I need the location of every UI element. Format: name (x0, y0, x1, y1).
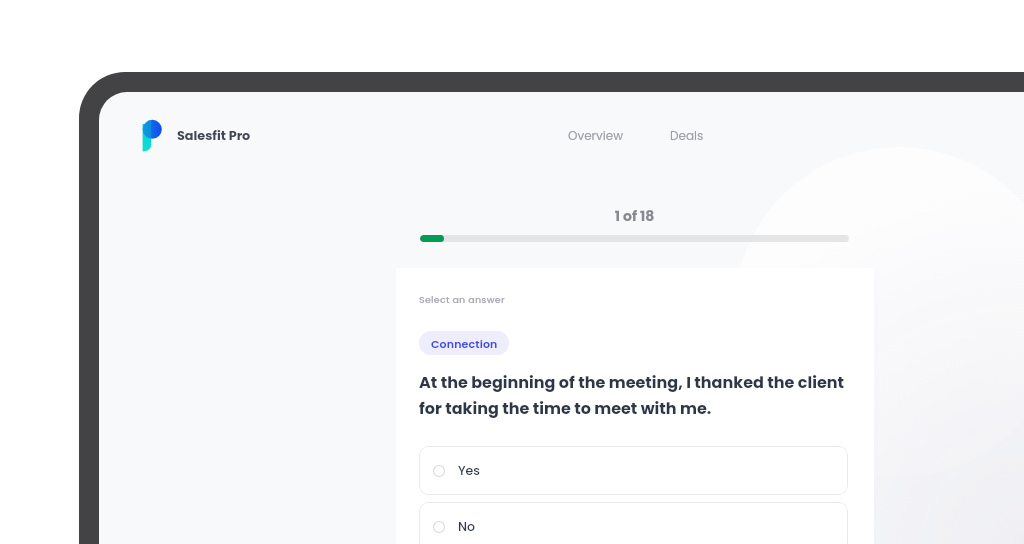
staticText: No (458, 518, 475, 535)
staticText: Connection (431, 336, 498, 351)
staticText: At the beginning of the meeting, I thank… (419, 371, 851, 420)
button[interactable]: Overview (562, 120, 630, 151)
staticText: Salesfit Pro (177, 127, 251, 145)
button[interactable]: Connection (419, 331, 509, 355)
staticText: Yes (458, 462, 480, 479)
staticText: Deals (670, 127, 704, 144)
button[interactable]: Deals (664, 120, 710, 151)
button[interactable]: No (419, 502, 848, 544)
button[interactable]: Yes (419, 446, 848, 495)
staticText: 1 of 18 (420, 206, 849, 226)
staticText: Overview (568, 127, 624, 144)
staticText: Select an answer (419, 293, 505, 306)
button[interactable]: Salesfit Pro (142, 117, 251, 153)
